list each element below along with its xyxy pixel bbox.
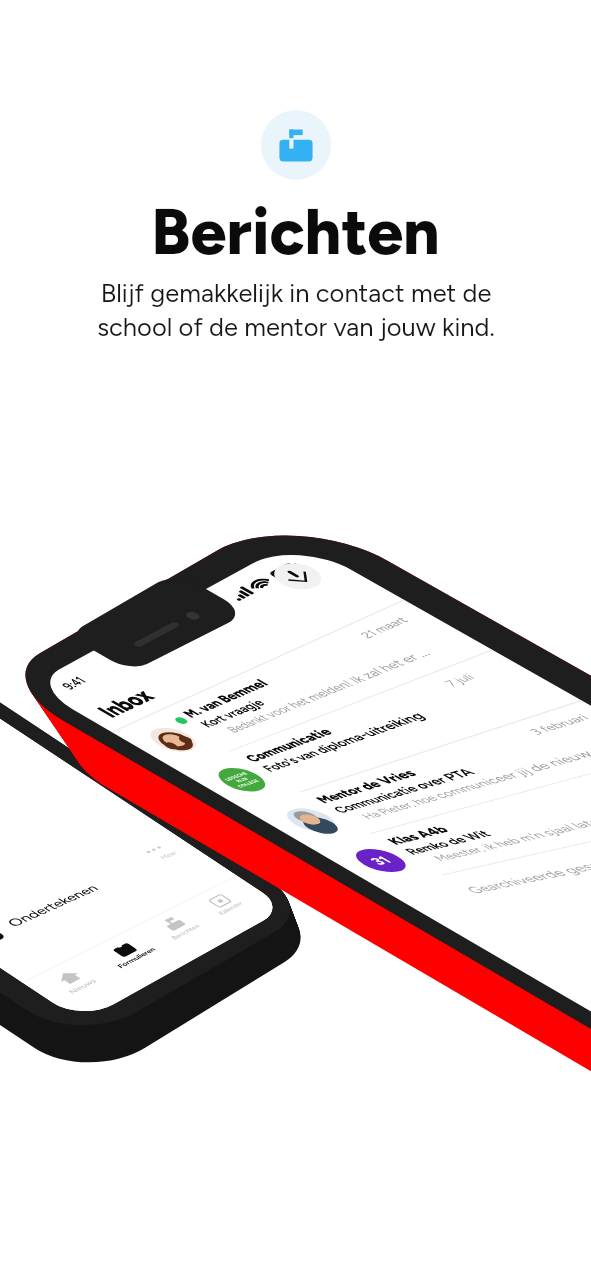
staticText: Blijf gemakkelijk in contact met de scho… [97, 278, 495, 342]
button[interactable]: Berichten [261, 110, 331, 180]
staticText: Berichten [151, 193, 440, 270]
